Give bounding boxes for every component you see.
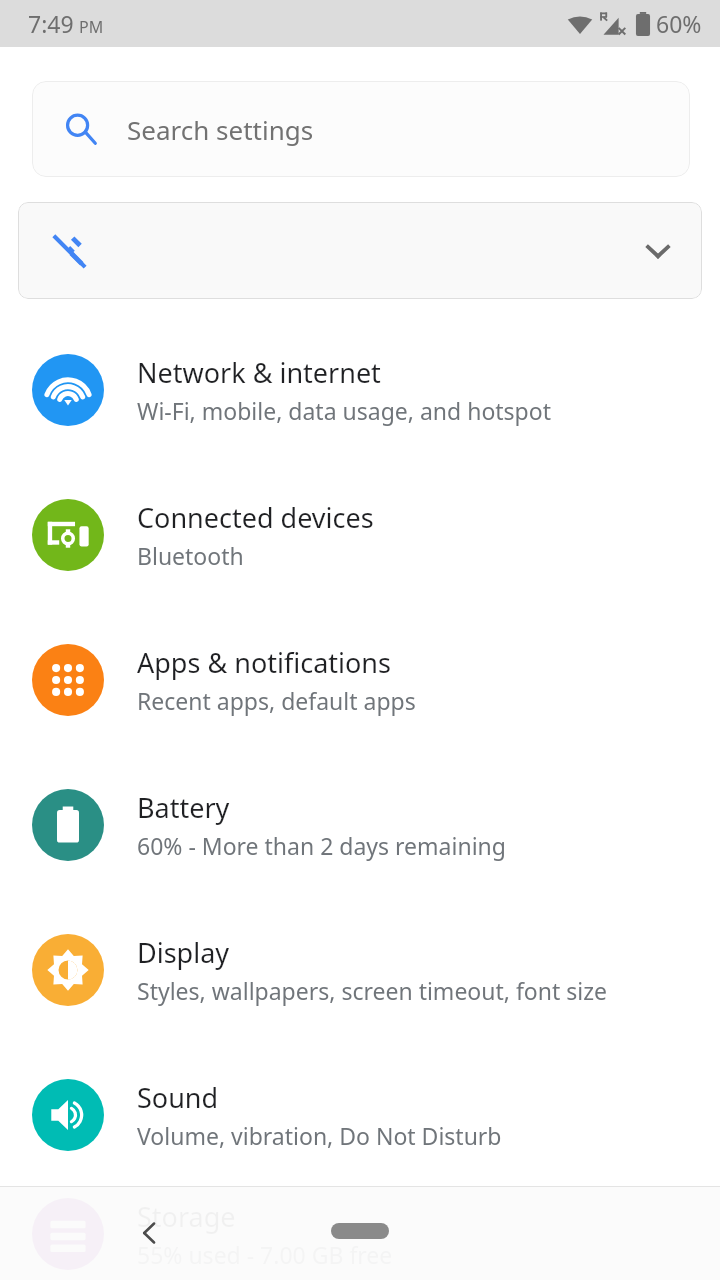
button[interactable]: Sound	[0, 1042, 720, 1187]
staticText: Volume, vibration, Do Not Disturb	[137, 1120, 502, 1151]
staticText: Display	[137, 934, 230, 971]
staticText: 60% - More than 2 days remaining	[137, 830, 506, 861]
button[interactable]: Connected devices	[0, 462, 720, 607]
staticText: Connected devices	[137, 499, 374, 536]
staticText: Battery	[137, 789, 230, 826]
staticText: Bluetooth	[137, 540, 244, 571]
staticText: 7:49	[28, 8, 74, 39]
button[interactable]: Network & internet	[0, 317, 720, 462]
staticText: PM	[79, 16, 104, 38]
button[interactable]: Expand suggestions	[18, 202, 702, 299]
staticText: Styles, wallpapers, screen timeout, font…	[137, 975, 607, 1006]
staticText: Sound	[137, 1079, 219, 1116]
button[interactable]: Storage	[0, 1187, 720, 1280]
staticText: Network & internet	[137, 354, 381, 391]
button[interactable]: Display	[0, 897, 720, 1042]
button[interactable]: Back	[122, 1205, 178, 1261]
staticText: Recent apps, default apps	[137, 685, 416, 716]
button[interactable]: Home	[321, 1213, 399, 1249]
staticText: Apps & notifications	[137, 644, 391, 681]
staticText: Search settings	[127, 112, 314, 147]
button[interactable]: Search settings	[32, 81, 690, 177]
staticText: Wi-Fi, mobile, data usage, and hotspot	[137, 395, 551, 426]
staticText: 55% used - 7.00 GB free	[137, 1239, 393, 1270]
staticText: 60%	[656, 8, 702, 39]
button[interactable]: Battery	[0, 752, 720, 897]
staticText: Storage	[137, 1198, 236, 1235]
button[interactable]: Apps & notifications	[0, 607, 720, 752]
